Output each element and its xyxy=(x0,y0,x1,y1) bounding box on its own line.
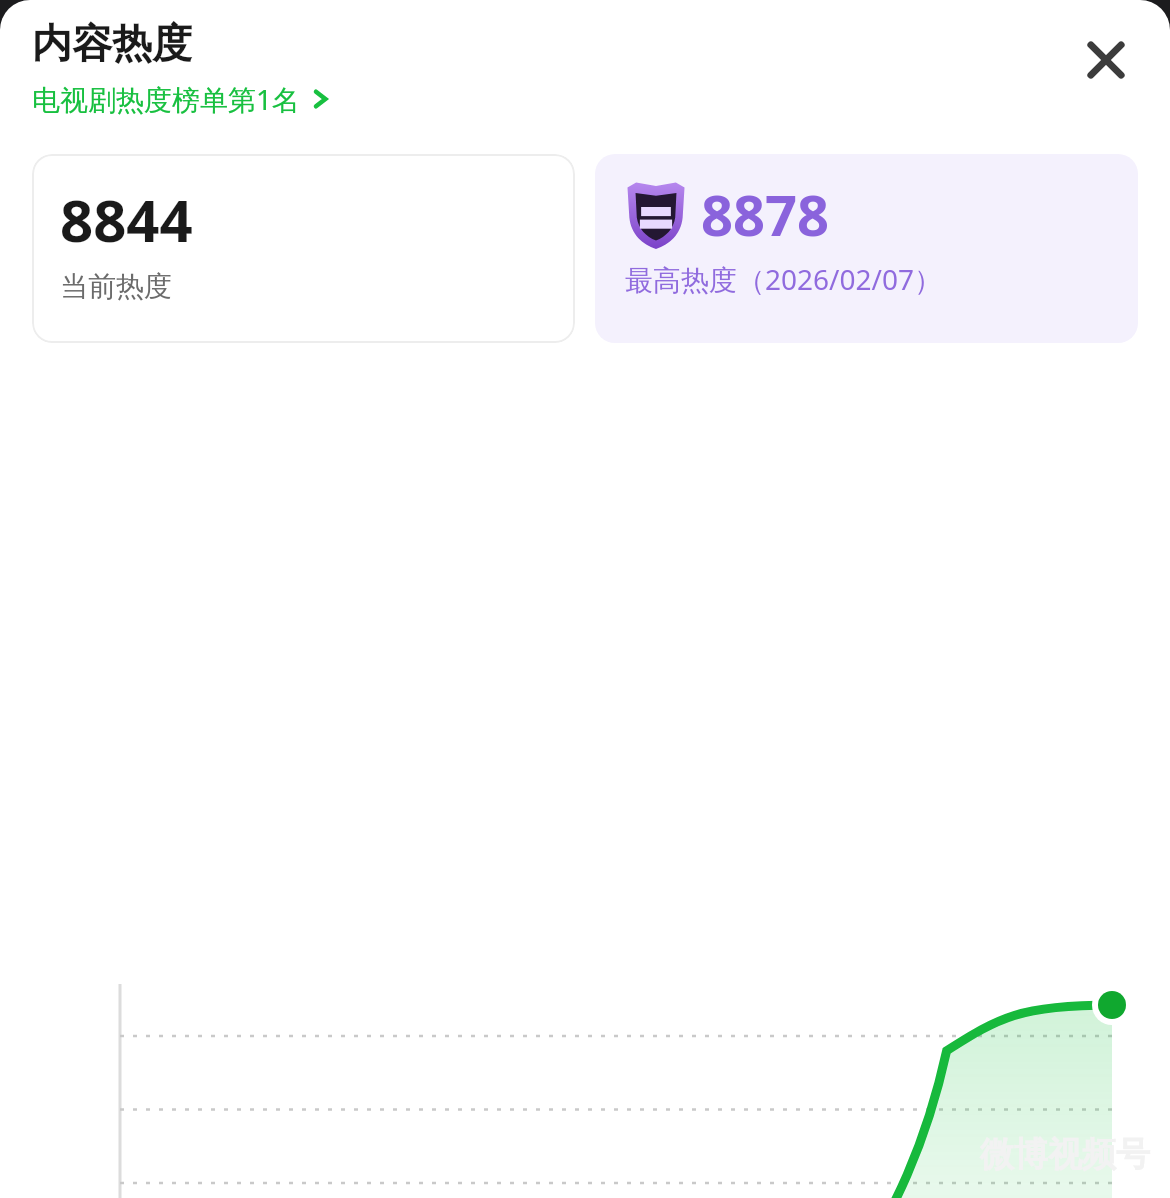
staticText: 8878 xyxy=(701,176,830,252)
staticText: 微博视频号 xyxy=(980,1133,1150,1176)
staticText: 当前热度 xyxy=(60,269,172,304)
staticText: 内容热度 xyxy=(32,18,192,68)
staticText: 最高热度（2026/02/07） xyxy=(625,260,942,298)
staticText: 电视剧热度榜单第1名 xyxy=(32,80,301,118)
button[interactable]: 电视剧热度榜单第1名 xyxy=(32,78,339,120)
staticText: 8844 xyxy=(60,180,193,259)
button[interactable]: 8878 xyxy=(595,154,1138,343)
button[interactable]: 8844 xyxy=(32,154,575,343)
button[interactable]: Close xyxy=(1070,24,1142,96)
